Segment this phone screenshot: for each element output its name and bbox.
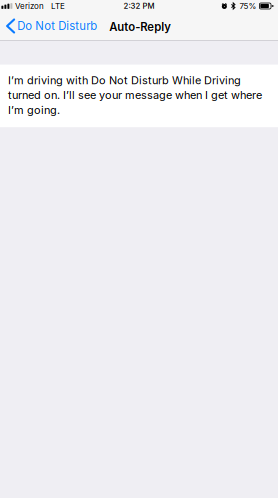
staticText: LTE: [51, 1, 65, 11]
button[interactable]: Do Not Disturb: [0, 12, 101, 40]
staticText: 75%: [239, 1, 256, 11]
button[interactable]: I’m driving with Do Not Disturb While Dr…: [0, 65, 278, 127]
staticText: Verizon: [15, 1, 44, 11]
staticText: Auto-Reply: [109, 20, 171, 34]
staticText: I’m driving with Do Not Disturb While Dr…: [8, 74, 262, 117]
staticText: Do Not Disturb: [17, 19, 97, 33]
staticText: 2:32 PM: [123, 1, 154, 11]
